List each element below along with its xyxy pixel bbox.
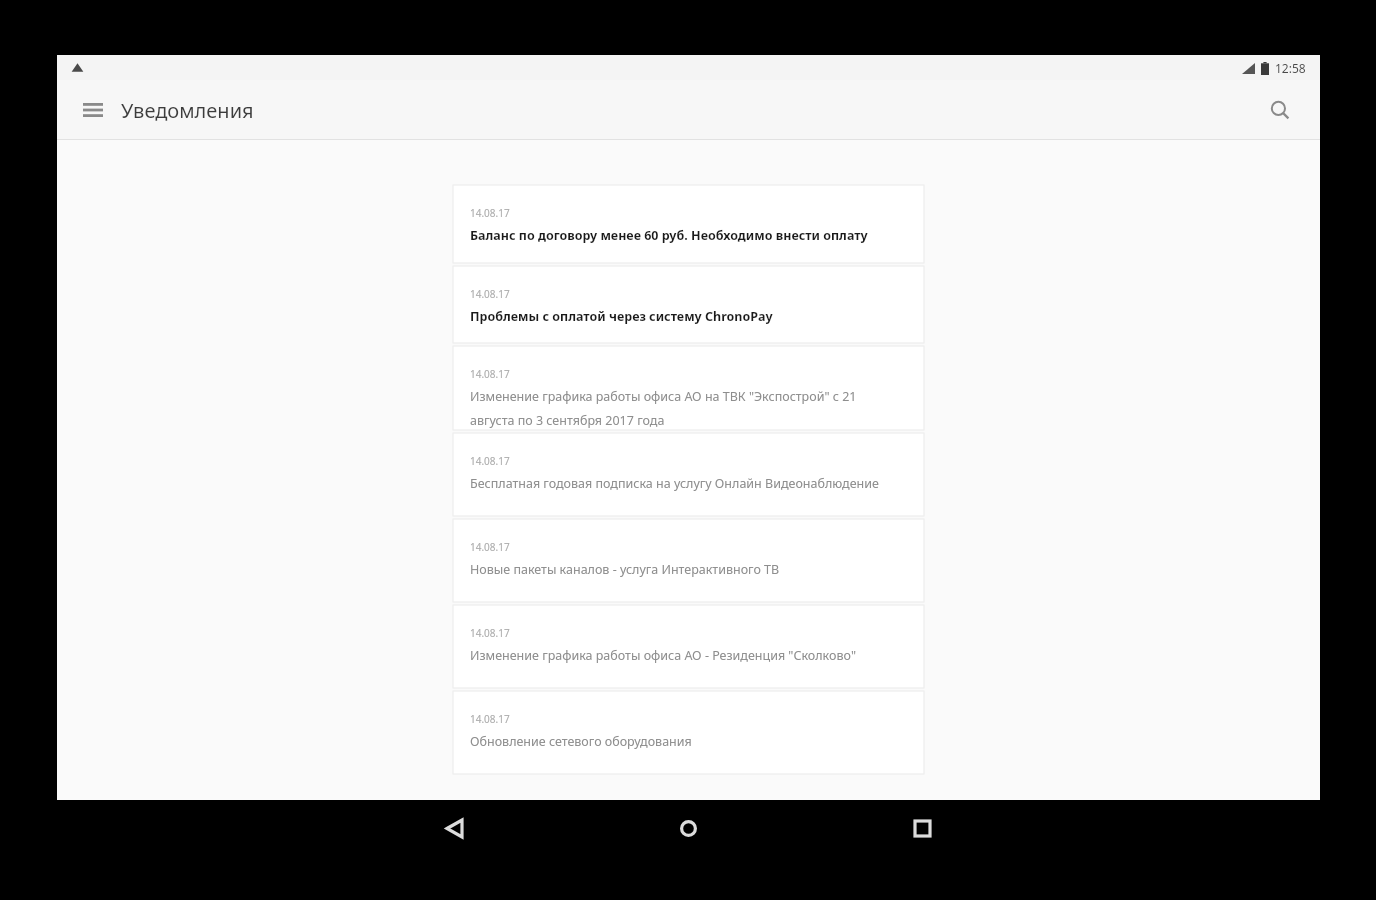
staticText: Проблемы с оплатой через систему ChronoP… — [470, 308, 773, 325]
button[interactable]: Search — [1256, 86, 1304, 134]
staticText: Новые пакеты каналов - услуга Интерактив… — [470, 561, 780, 578]
button[interactable]: 14.08.17 — [453, 519, 924, 602]
button[interactable]: Menu — [69, 86, 117, 134]
staticText: 12:58 — [1275, 60, 1306, 76]
staticText: 14.08.17 — [470, 626, 510, 640]
staticText: Изменение графика работы офиса АО на ТВК… — [470, 388, 857, 405]
button[interactable]: Recent apps — [898, 804, 946, 852]
staticText: 14.08.17 — [470, 454, 510, 468]
button[interactable]: 14.08.17 — [453, 605, 924, 688]
staticText: 14.08.17 — [470, 712, 510, 726]
button[interactable]: Home — [664, 804, 712, 852]
button[interactable]: 14.08.17 — [453, 433, 924, 516]
staticText: 14.08.17 — [470, 206, 510, 220]
staticText: Бесплатная годовая подписка на услугу Он… — [470, 475, 879, 492]
staticText: Обновление сетевого оборудования — [470, 733, 692, 750]
staticText: 14.08.17 — [470, 540, 510, 554]
button[interactable]: 14.08.17 — [453, 691, 924, 774]
staticText: 14.08.17 — [470, 287, 510, 301]
button[interactable]: 14.08.17 — [453, 346, 924, 430]
button[interactable]: Back — [430, 804, 478, 852]
button[interactable]: 14.08.17 — [453, 185, 924, 263]
button[interactable]: 14.08.17 — [453, 266, 924, 343]
staticText: августа по 3 сентября 2017 года — [470, 412, 665, 429]
staticText: Изменение графика работы офиса АО - Рези… — [470, 647, 857, 664]
staticText: Уведомления — [121, 97, 254, 124]
staticText: 14.08.17 — [470, 367, 510, 381]
staticText: Баланс по договору менее 60 руб. Необход… — [470, 227, 868, 244]
